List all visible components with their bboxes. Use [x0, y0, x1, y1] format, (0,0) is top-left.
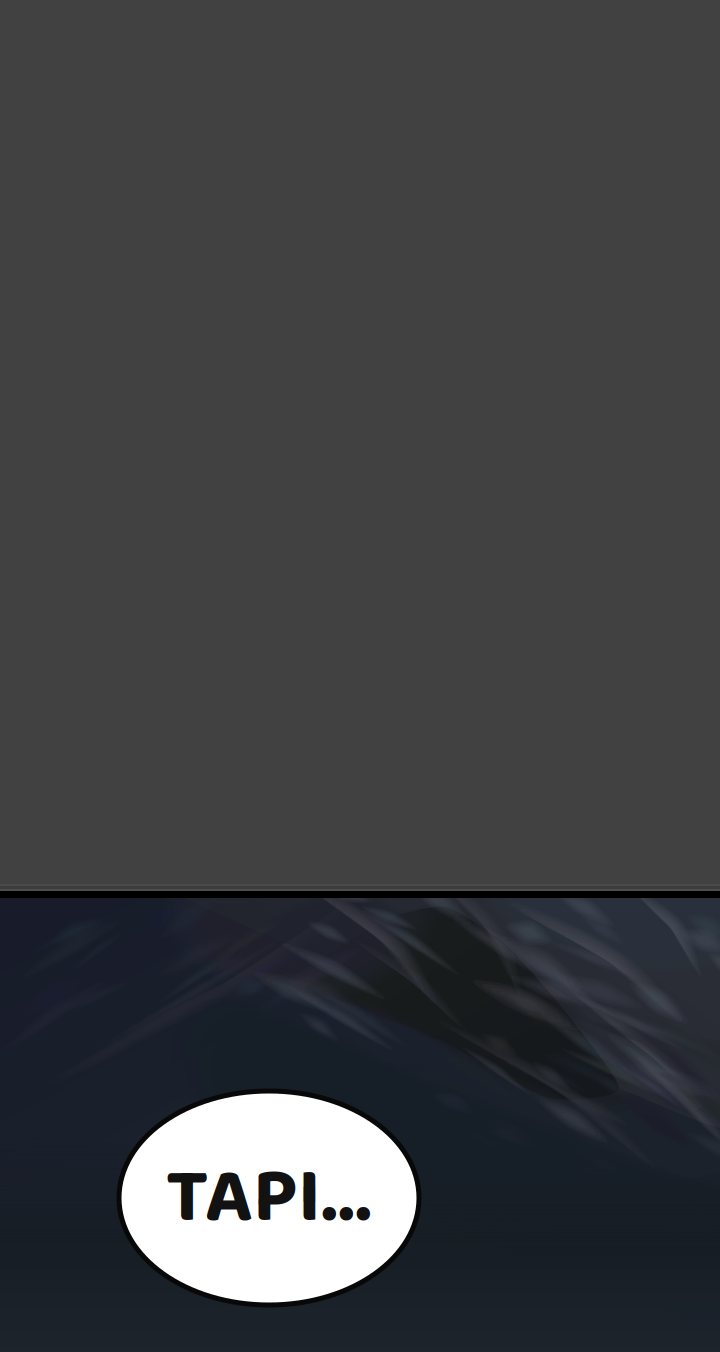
staticText: TAPI... [166, 1136, 372, 1260]
